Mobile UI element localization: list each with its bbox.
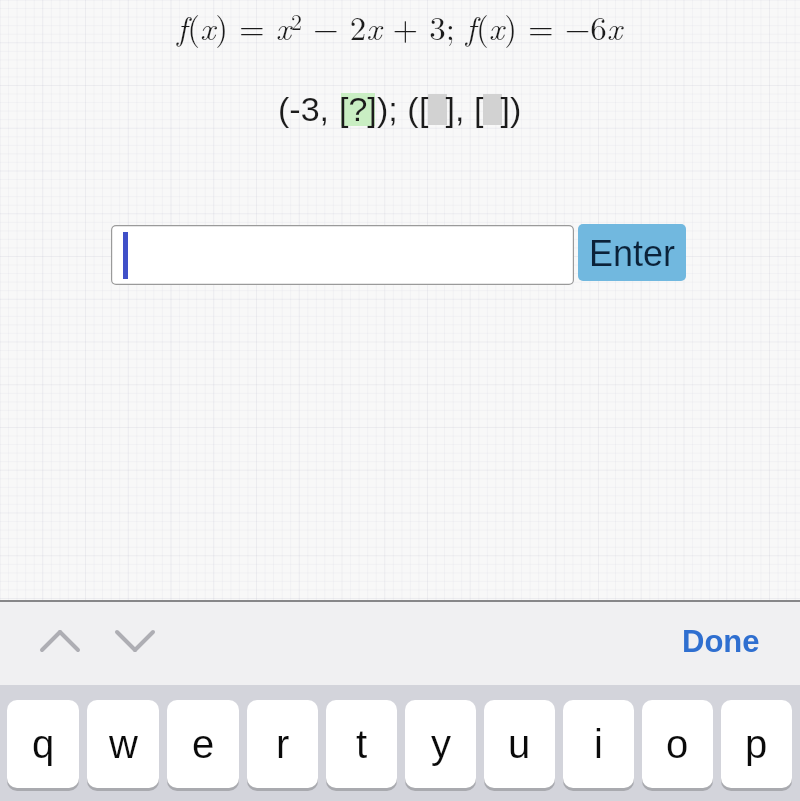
button[interactable]: p bbox=[721, 700, 792, 788]
button[interactable]: Previous field bbox=[30, 611, 90, 671]
staticText: q bbox=[32, 722, 55, 767]
staticText: e bbox=[192, 722, 215, 767]
staticText: ) bbox=[510, 90, 522, 128]
staticText: , bbox=[455, 90, 474, 128]
button[interactable]: q bbox=[7, 700, 79, 788]
button[interactable]: t bbox=[326, 700, 397, 788]
button[interactable]: e bbox=[167, 700, 239, 788]
staticText: Done bbox=[682, 624, 760, 659]
button[interactable]: Enter bbox=[578, 224, 686, 281]
staticText: ); ( bbox=[377, 90, 419, 128]
staticText: (-3, bbox=[278, 90, 339, 128]
button[interactable]: Done bbox=[676, 603, 766, 658]
staticText: i bbox=[594, 722, 603, 767]
button[interactable]: Next field bbox=[105, 611, 165, 671]
button[interactable]: u bbox=[484, 700, 555, 788]
button[interactable]: i bbox=[563, 700, 634, 788]
staticText: [ ] bbox=[474, 90, 510, 128]
staticText: t bbox=[356, 722, 368, 767]
staticText: r bbox=[276, 722, 290, 767]
staticText: p bbox=[745, 722, 768, 767]
button[interactable]: y bbox=[405, 700, 476, 788]
button[interactable]: o bbox=[642, 700, 713, 788]
staticText: [ ] bbox=[419, 90, 455, 128]
staticText: y bbox=[431, 722, 451, 767]
button[interactable]: r bbox=[247, 700, 318, 788]
staticText: o bbox=[666, 722, 689, 767]
staticText: w bbox=[109, 722, 138, 767]
button[interactable]: w bbox=[87, 700, 159, 788]
staticText: u bbox=[508, 722, 531, 767]
button[interactable] bbox=[111, 225, 574, 285]
staticText: f(x) = x2 − 2x + 3; f(x) = −6x bbox=[177, 3, 623, 50]
staticText: Enter bbox=[589, 233, 676, 273]
staticText: [?] bbox=[339, 90, 377, 128]
